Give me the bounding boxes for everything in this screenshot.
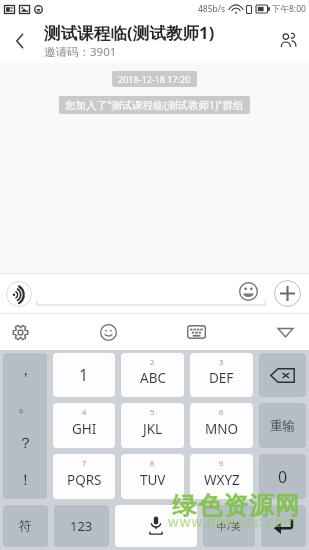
button[interactable]: Enter — [261, 505, 306, 547]
staticText: 4 — [82, 407, 87, 417]
button[interactable]: Emoji — [237, 280, 260, 303]
staticText: 。 — [18, 397, 33, 416]
staticText: JKL — [143, 420, 163, 438]
button[interactable]: Punctuation — [3, 353, 47, 499]
staticText: ！ — [18, 471, 33, 490]
staticText: 下午8:00 — [272, 3, 306, 15]
staticText: MNO — [205, 420, 239, 438]
staticText: 123 — [70, 517, 93, 535]
staticText: 重输 — [270, 418, 295, 434]
button[interactable]: Delete — [259, 353, 306, 397]
staticText: 3 — [219, 357, 224, 367]
button[interactable]: WXYZ — [190, 454, 253, 499]
button[interactable]: 中/英 — [203, 505, 255, 547]
staticText: 6 — [219, 407, 224, 417]
staticText: ABC — [140, 369, 166, 387]
staticText: ？ — [18, 434, 33, 453]
button[interactable]: Settings — [0, 314, 42, 350]
button[interactable]: PQRS — [53, 454, 115, 499]
button[interactable]: Keyboard — [174, 314, 218, 350]
button[interactable]: Members — [267, 18, 309, 63]
button[interactable]: 1 — [53, 353, 115, 397]
staticText: ， — [18, 361, 33, 380]
button[interactable]: ABC — [121, 353, 184, 397]
staticText: 0 — [278, 466, 288, 488]
staticText: 2018-12-18 17:20 — [118, 73, 191, 85]
staticText: WXYZ — [204, 471, 240, 489]
button[interactable]: ， — [3, 353, 47, 389]
staticText: 邀请码：3901 — [44, 44, 117, 60]
staticText: GHI — [72, 420, 97, 438]
staticText: 符 — [19, 518, 32, 534]
button[interactable]: GHI — [53, 403, 115, 448]
button[interactable]: JKL — [121, 403, 184, 448]
staticText: 2 — [150, 357, 155, 367]
button[interactable]: DEF — [190, 353, 253, 397]
button[interactable]: 。 — [3, 389, 47, 425]
button[interactable]: MNO — [190, 403, 253, 448]
button[interactable]: TUV — [121, 454, 184, 499]
staticText: 测试课程临(测试教师1) — [44, 21, 215, 44]
staticText: 5 — [150, 407, 155, 417]
staticText: 8 — [150, 458, 155, 468]
button[interactable]: Voice input — [6, 281, 32, 307]
staticText: www.downcc.com — [168, 513, 298, 531]
staticText: 7 — [82, 458, 87, 468]
button[interactable]: Collapse keyboard — [263, 314, 307, 350]
staticText: 1 — [79, 364, 89, 386]
staticText: DEF — [209, 369, 234, 387]
button[interactable]: 重输 — [259, 403, 306, 448]
button[interactable]: 0 — [259, 454, 306, 499]
button[interactable]: ？ — [3, 425, 47, 462]
staticText: TUV — [140, 471, 166, 489]
button[interactable]: 符 — [3, 505, 48, 547]
staticText: 中/英 — [217, 519, 241, 533]
button[interactable]: Space — [115, 505, 197, 547]
button[interactable]: Emoji panel — [86, 314, 130, 350]
staticText: 绿色资源网 — [172, 490, 301, 521]
button[interactable]: ！ — [3, 462, 47, 499]
staticText: 9 — [219, 458, 224, 468]
button[interactable] — [36, 278, 266, 306]
staticText: PQRS — [67, 471, 102, 489]
button[interactable]: 123 — [54, 505, 109, 547]
staticText: 485b/s — [198, 3, 226, 15]
staticText: 您加入了"测试课程临(测试教师1)"群组 — [65, 98, 244, 112]
button[interactable]: Back — [0, 18, 38, 63]
button[interactable]: More options — [274, 280, 301, 307]
